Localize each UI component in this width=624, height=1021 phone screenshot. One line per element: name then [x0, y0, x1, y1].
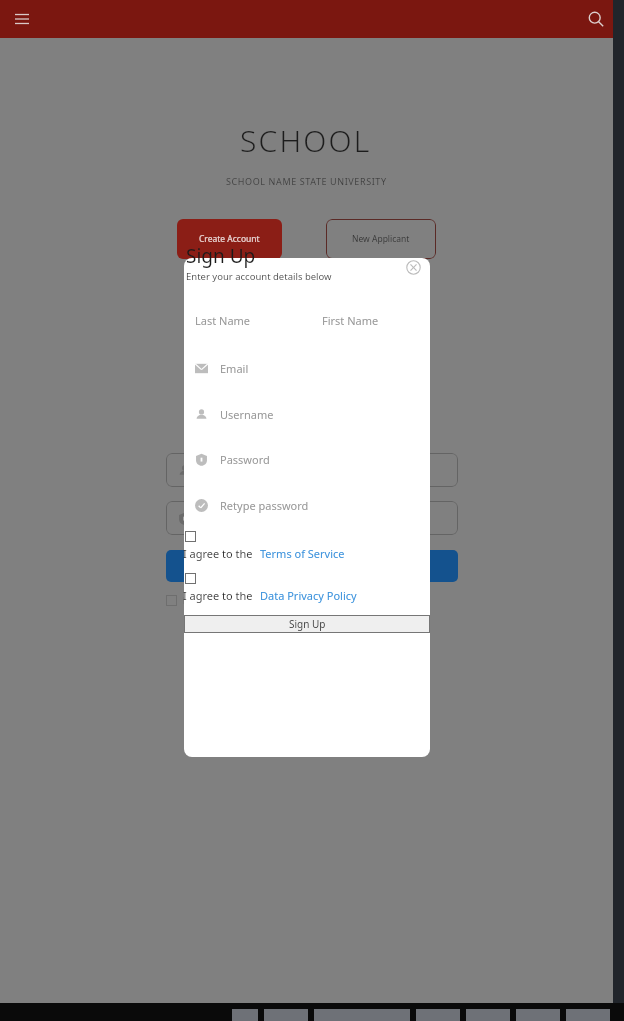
staticText: Username [220, 407, 274, 422]
button[interactable]: Search [582, 5, 610, 33]
button[interactable]: New Applicant [326, 219, 436, 259]
button[interactable]: First Name [322, 313, 379, 328]
staticText: Create Account [199, 233, 260, 245]
staticText: Sign Up [289, 617, 326, 631]
button[interactable]: Remember me [166, 595, 177, 606]
button[interactable]: I agree to the [183, 546, 345, 561]
button[interactable]: Username [195, 404, 430, 424]
button[interactable]: Agree to Data Privacy Policy [185, 573, 196, 584]
staticText: SCHOOL NAME STATE UNIVERSITY [226, 175, 387, 187]
staticText: Data Privacy Policy [260, 588, 357, 603]
button[interactable]: Agree to Terms of Service [185, 531, 196, 542]
staticText: I agree to the [183, 546, 256, 561]
button[interactable] [166, 501, 458, 535]
staticText: Sign Up [186, 243, 256, 269]
staticText: Email [220, 361, 249, 376]
button[interactable]: Create Account [177, 219, 282, 259]
button[interactable]: Retype password [195, 495, 430, 515]
button[interactable]: Last Name [195, 313, 251, 328]
staticText: Last Name [195, 313, 251, 328]
staticText: First Name [322, 313, 379, 328]
button[interactable]: Sign Up [184, 615, 430, 633]
button[interactable]: I agree to the [183, 588, 357, 603]
button[interactable]: Password [195, 449, 430, 469]
staticText: New Applicant [352, 233, 410, 245]
staticText: SCHOOL [240, 120, 372, 161]
button[interactable]: Menu [8, 5, 36, 33]
staticText: I agree to the [183, 588, 256, 603]
staticText: Retype password [220, 498, 309, 513]
staticText: Terms of Service [260, 546, 345, 561]
staticText: Password [220, 452, 270, 467]
button[interactable] [166, 550, 458, 582]
button[interactable]: Email [195, 358, 430, 378]
staticText: R [183, 594, 189, 606]
button[interactable]: Close [403, 257, 424, 278]
button[interactable] [166, 453, 458, 487]
staticText: Enter your account details below [186, 270, 332, 283]
staticText: SIGN IN [238, 391, 386, 437]
